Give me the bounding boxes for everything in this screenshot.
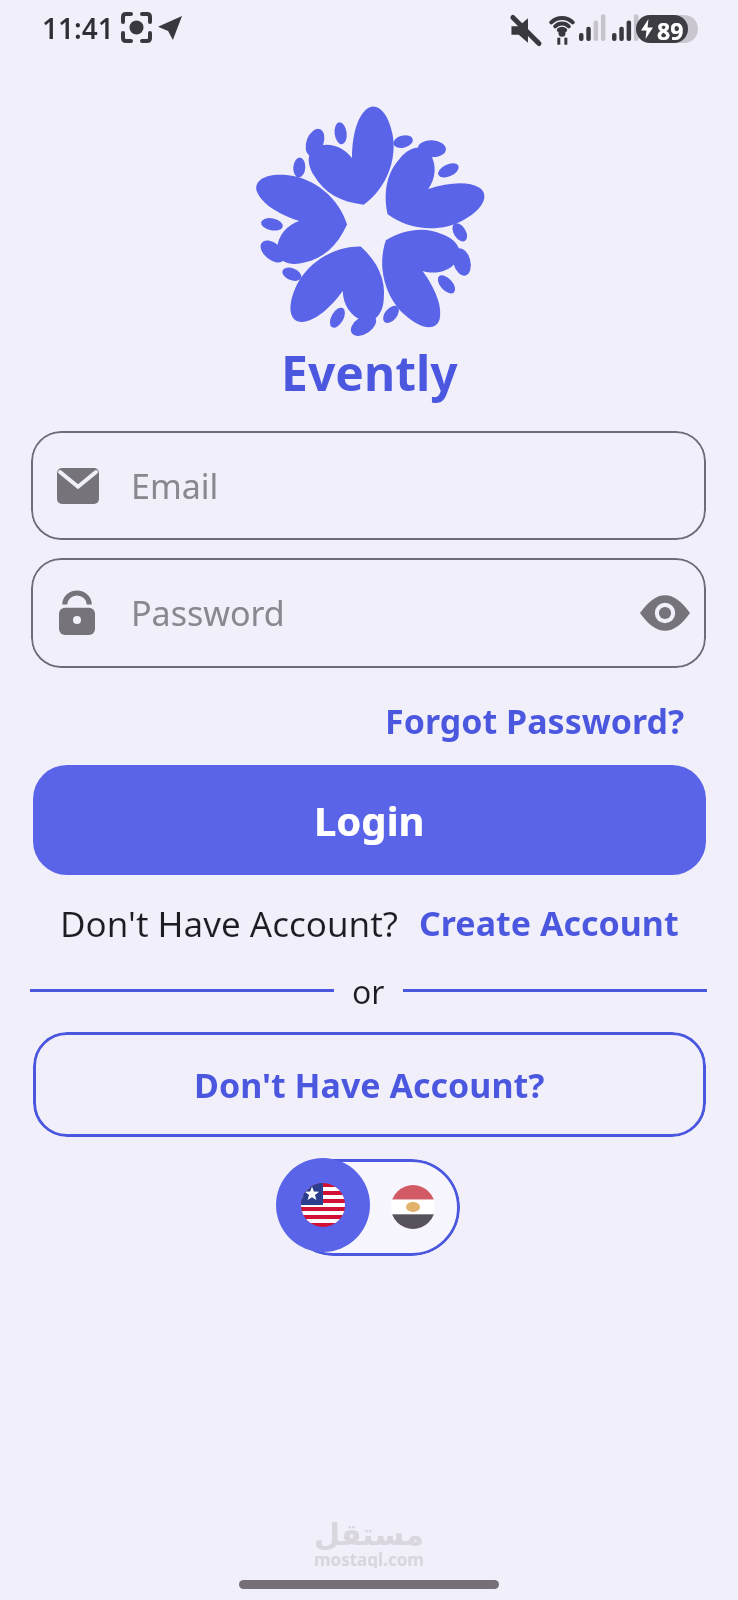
- staticText: Evently: [281, 340, 458, 404]
- staticText: 89: [657, 15, 684, 43]
- staticText: Login: [314, 793, 425, 847]
- staticText: Don't Have Account?: [194, 1062, 545, 1108]
- button[interactable]: Password: [31, 558, 706, 668]
- staticText: 11:41: [42, 9, 114, 47]
- staticText: مستقل: [314, 1517, 424, 1552]
- staticText: Create Account: [419, 900, 679, 944]
- staticText: Forgot Password?: [385, 698, 685, 742]
- staticText: Don't Have Account?: [60, 900, 399, 944]
- button[interactable]: [640, 596, 690, 630]
- staticText: or: [352, 970, 385, 1010]
- button[interactable]: Login: [33, 765, 706, 875]
- staticText: Password: [131, 590, 285, 636]
- staticText: mostaql.com: [314, 1548, 424, 1568]
- staticText: Email: [131, 463, 219, 509]
- button[interactable]: Forgot Password?: [385, 698, 685, 742]
- button[interactable]: Create Account: [419, 900, 679, 944]
- button[interactable]: Email: [31, 431, 706, 540]
- button[interactable]: Don't Have Account?: [33, 1032, 706, 1137]
- button[interactable]: [276, 1158, 370, 1252]
- button[interactable]: [285, 1159, 460, 1256]
